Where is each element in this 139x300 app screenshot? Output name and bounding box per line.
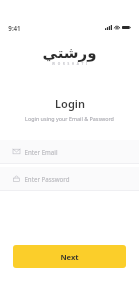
button[interactable]: Enter Password: [0, 167, 139, 190]
staticText: Login using your Email & Password: [25, 115, 114, 122]
button[interactable]: Enter Email: [0, 140, 139, 163]
staticText: W O R S H A T I: [52, 62, 88, 66]
staticText: ورشتي: [42, 44, 97, 61]
staticText: Enter Email: [24, 148, 58, 156]
staticText: Login: [55, 96, 85, 111]
staticText: Enter Password: [24, 175, 70, 183]
staticText: Next: [60, 252, 79, 262]
button[interactable]: Next: [13, 245, 126, 268]
staticText: 9:41: [8, 24, 21, 32]
